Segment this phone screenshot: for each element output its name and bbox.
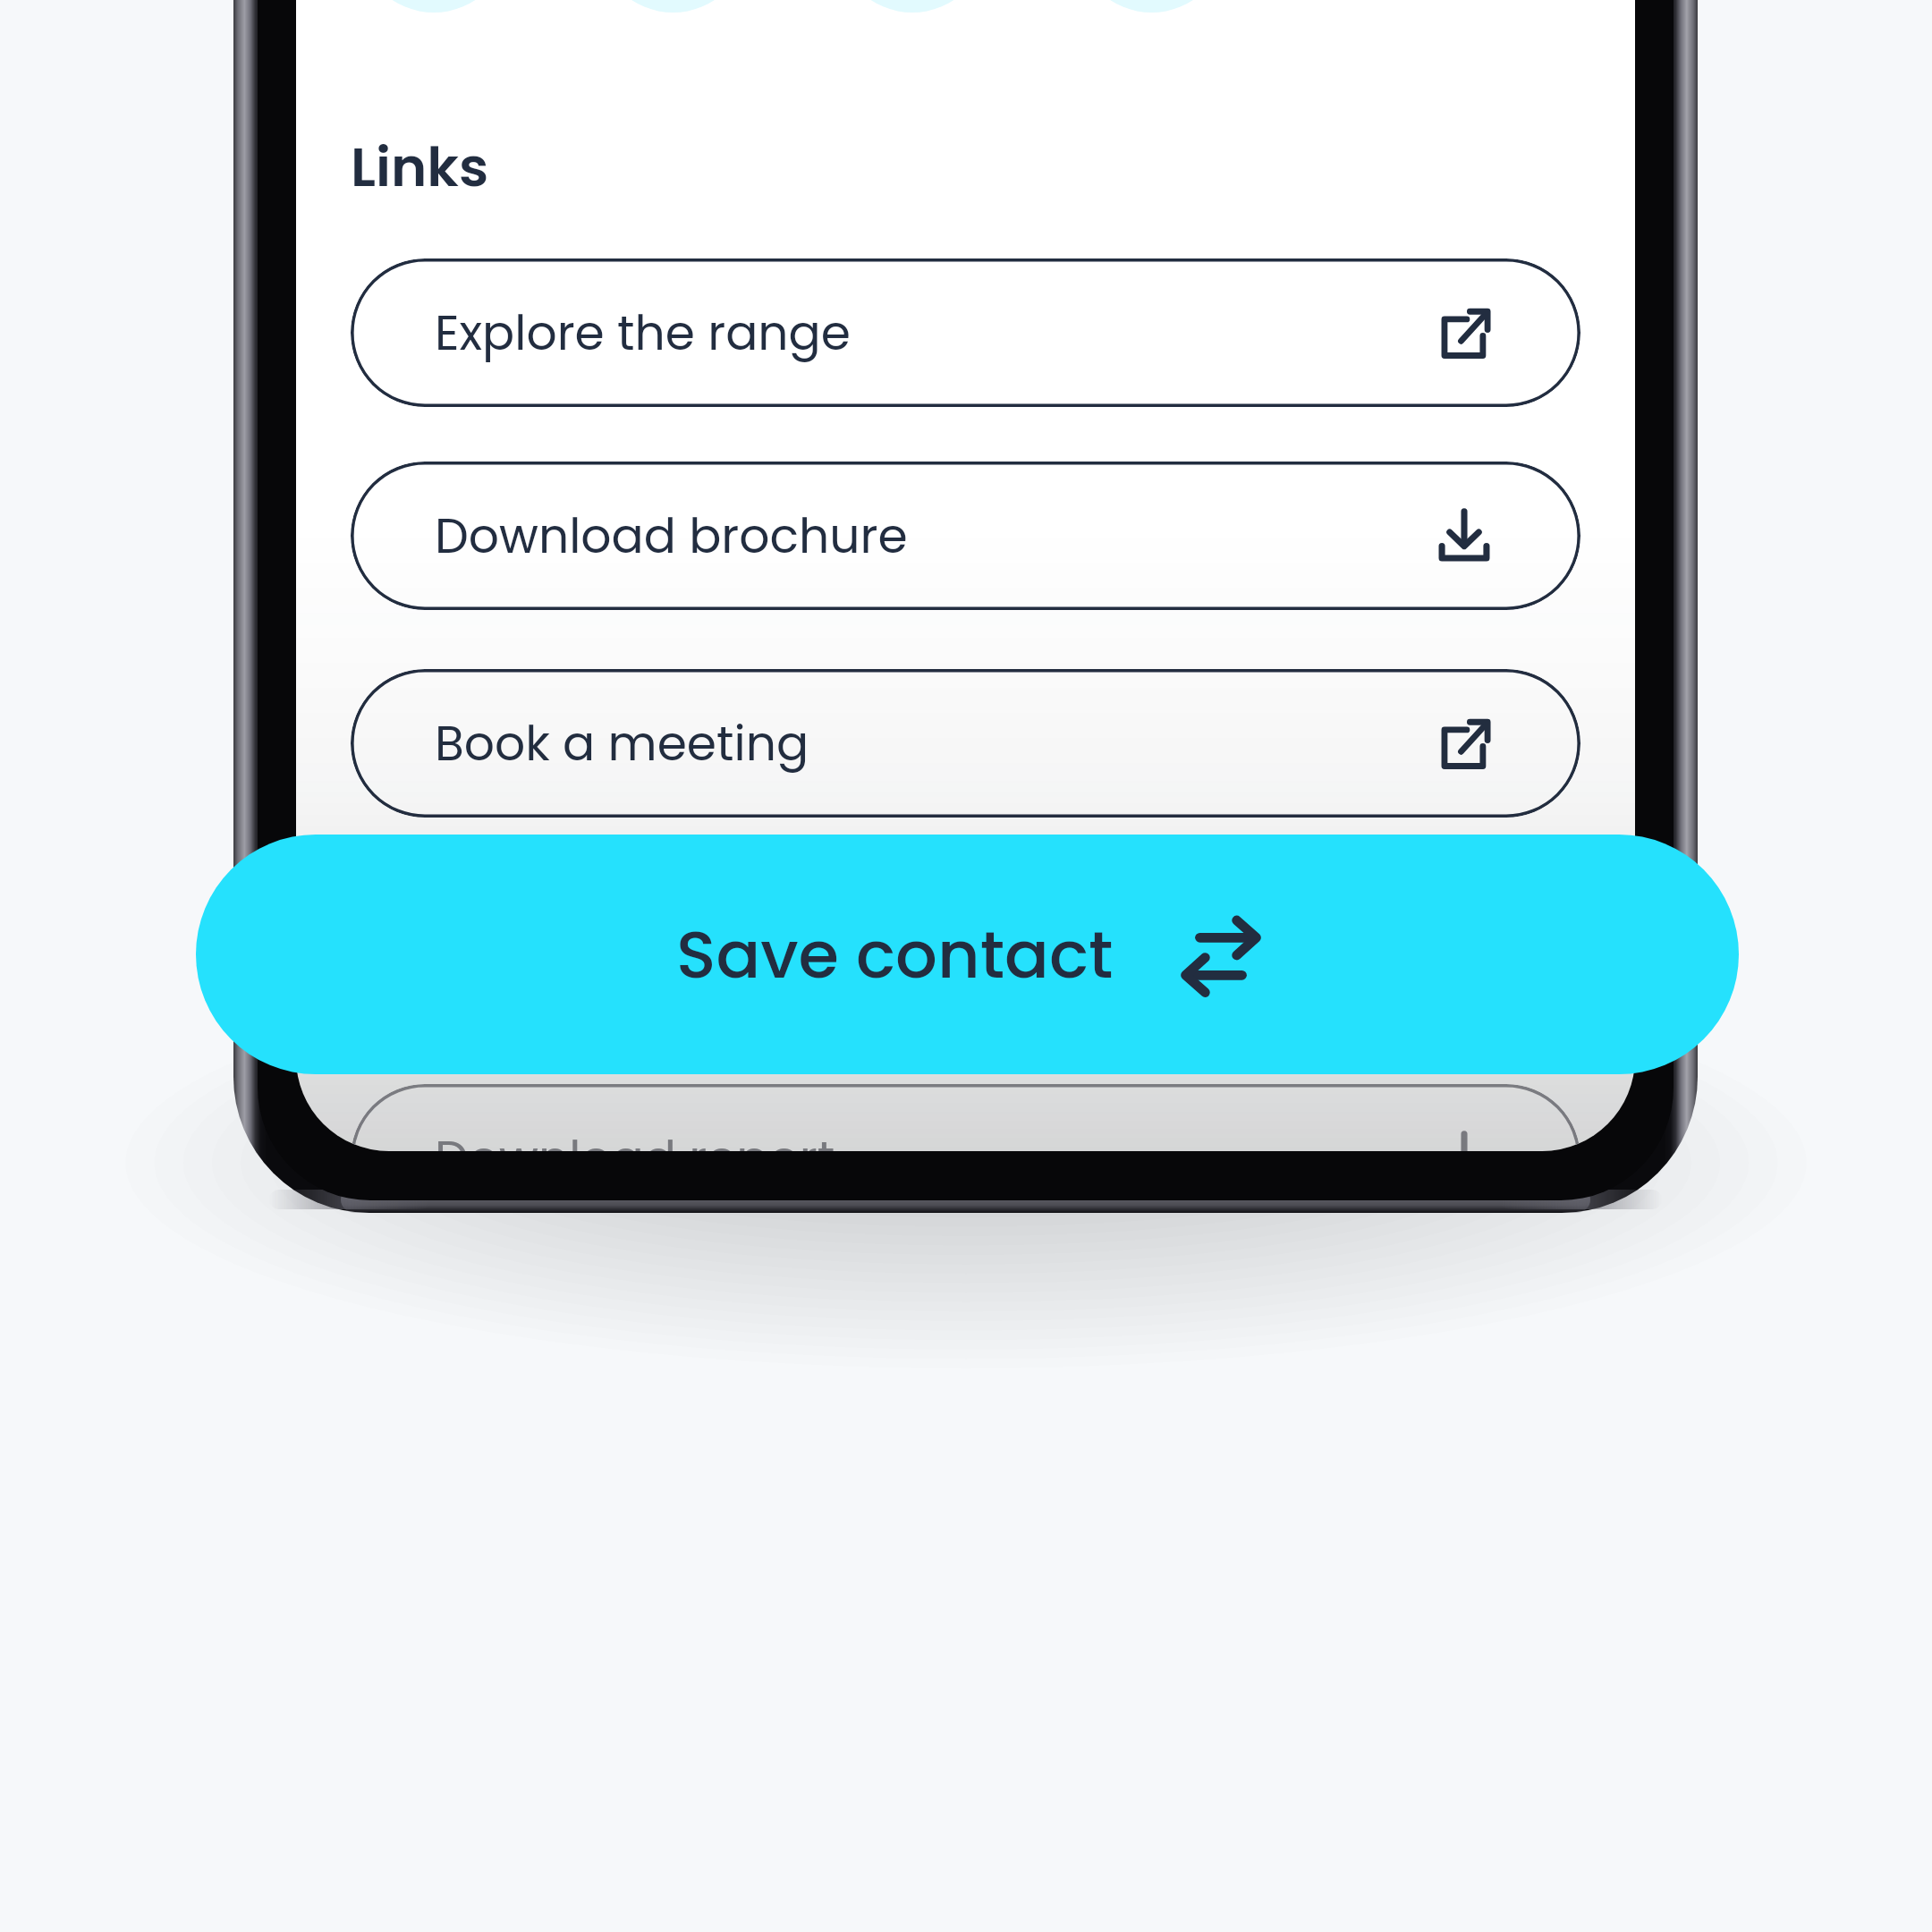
staticText: Book a meeting [435, 710, 809, 777]
button[interactable]: Join the newsletter [351, 877, 1580, 1025]
staticText: Save contact [676, 909, 1114, 1001]
other: Download file [1438, 510, 1490, 562]
staticText: Explore the range [435, 300, 851, 367]
other: Open link [1438, 307, 1490, 359]
button[interactable]: Download report [351, 1084, 1580, 1151]
staticText: Download brochure [435, 503, 908, 570]
staticText: Download report [435, 1125, 835, 1151]
button[interactable]: Explore the range [351, 258, 1580, 407]
button[interactable]: Save contact [196, 835, 1739, 1074]
button[interactable]: Book a meeting [351, 669, 1580, 818]
staticText: Join the newsletter [435, 918, 885, 985]
other: Open link [1438, 717, 1490, 769]
button[interactable]: Download brochure [351, 462, 1580, 610]
staticText: Links [351, 129, 489, 205]
other: Download file [1438, 1132, 1490, 1151]
